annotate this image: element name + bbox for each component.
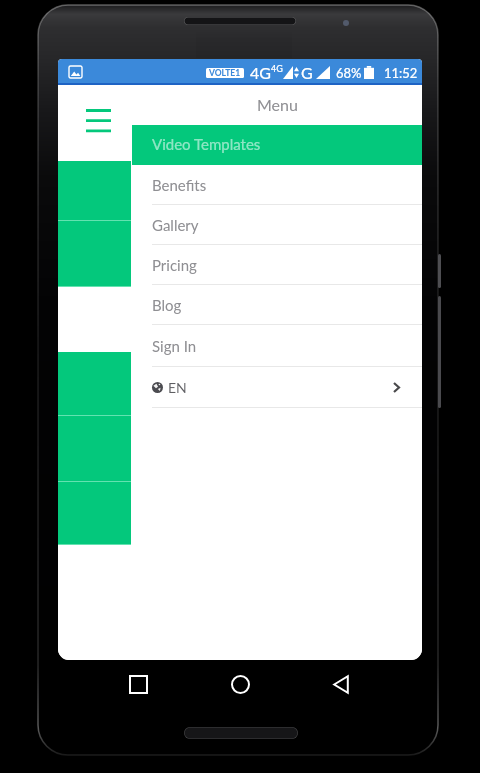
button[interactable]: Pricing: [132, 245, 422, 285]
staticText: Sign In: [152, 337, 197, 355]
staticText: Video Templates: [152, 135, 261, 153]
staticText: EN: [168, 379, 187, 396]
staticText: Pricing: [152, 256, 197, 274]
staticText: Gallery: [152, 216, 199, 234]
staticText: 4G: [250, 63, 271, 82]
staticText: Menu: [257, 95, 298, 114]
staticText: VOLTE1: [209, 68, 241, 78]
button[interactable]: Recent apps: [120, 666, 156, 702]
button[interactable]: Back: [323, 666, 359, 702]
staticText: 11:52: [384, 65, 418, 81]
staticText: G: [301, 63, 313, 82]
button[interactable]: Home: [222, 666, 258, 702]
button[interactable]: Video Templates: [132, 125, 422, 165]
staticText: 4G: [271, 63, 283, 74]
staticText: Blog: [152, 296, 182, 314]
staticText: Benefits: [152, 176, 207, 194]
staticText: 68%: [336, 65, 362, 81]
button[interactable]: Sign In: [132, 325, 422, 367]
button[interactable]: EN: [132, 367, 422, 408]
button[interactable]: Blog: [132, 285, 422, 325]
button[interactable]: Gallery: [132, 205, 422, 245]
button[interactable]: Open navigation menu: [75, 100, 117, 140]
button[interactable]: Benefits: [132, 165, 422, 205]
